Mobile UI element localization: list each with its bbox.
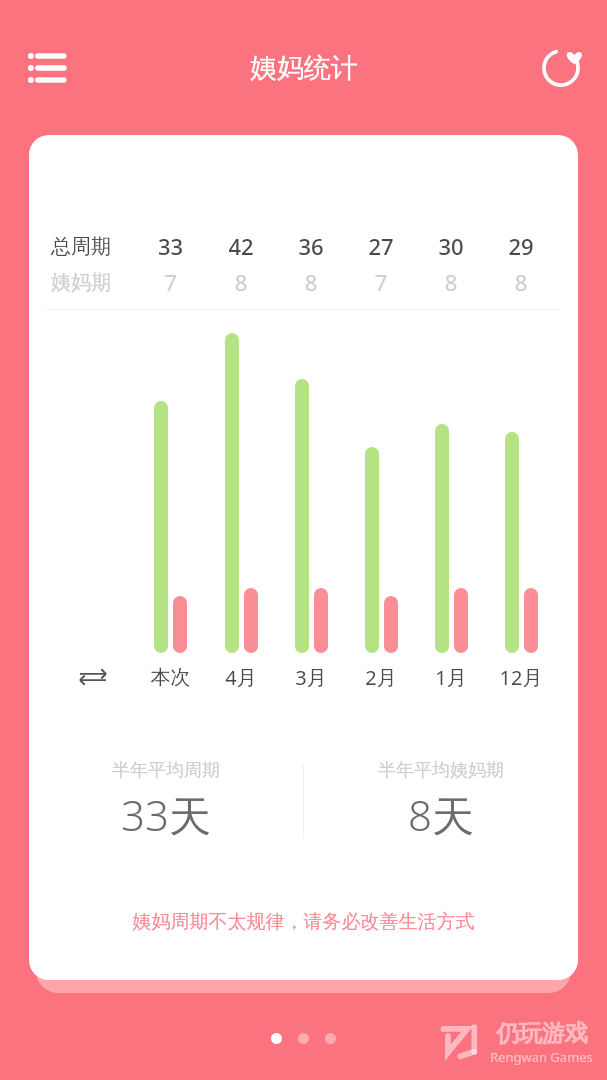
staticText: 8 — [416, 267, 486, 297]
staticText: 2月 — [346, 664, 416, 691]
button[interactable]: Swap — [51, 653, 135, 701]
staticText: 姨妈统计 — [250, 51, 358, 85]
staticText: 33天 — [121, 786, 211, 843]
staticText: 1月 — [416, 664, 486, 691]
staticText: 7 — [135, 267, 206, 297]
staticText: 8 — [486, 267, 556, 297]
staticText: 12月 — [486, 664, 556, 691]
staticText: 7 — [346, 267, 416, 297]
button[interactable]: Page 2 — [298, 1033, 309, 1044]
button[interactable]: Record — [529, 36, 593, 100]
staticText: 29 — [486, 231, 556, 261]
staticText: 8 — [206, 267, 276, 297]
staticText: 3月 — [276, 664, 346, 691]
staticText: 42 — [206, 231, 276, 261]
staticText: 总周期 — [51, 234, 135, 259]
staticText: 4月 — [206, 664, 276, 691]
button[interactable]: Page 3 — [325, 1033, 336, 1044]
staticText: 8天 — [408, 786, 474, 843]
staticText: 姨妈周期不太规律，请务必改善生活方式 — [29, 910, 578, 934]
staticText: 半年平均姨妈期 — [378, 759, 504, 782]
staticText: 仍玩游戏 — [496, 1019, 588, 1048]
staticText: 30 — [416, 231, 486, 261]
button[interactable]: Menu — [14, 36, 78, 100]
staticText: 半年平均周期 — [112, 759, 220, 782]
staticText: 33 — [135, 231, 206, 261]
staticText: Rengwan Games — [490, 1048, 593, 1066]
staticText: 8 — [276, 267, 346, 297]
staticText: 27 — [346, 231, 416, 261]
staticText: 姨妈期 — [51, 270, 135, 295]
staticText: 本次 — [135, 665, 206, 690]
staticText: 36 — [276, 231, 346, 261]
button[interactable]: Page 1 — [271, 1033, 282, 1044]
